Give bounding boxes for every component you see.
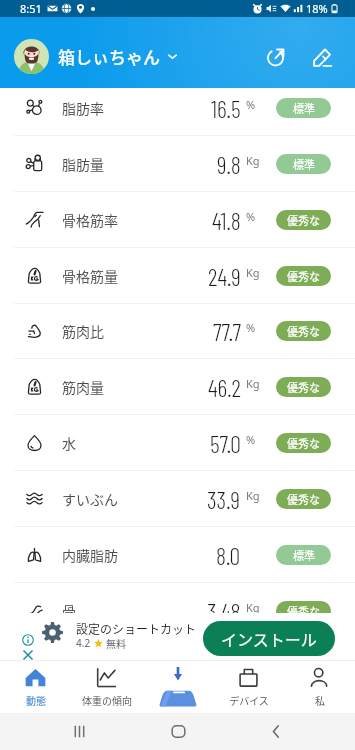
button[interactable]: 体重の傾向 bbox=[71, 660, 142, 714]
button[interactable]: Back bbox=[256, 713, 296, 750]
button[interactable]: 骨格筋率 bbox=[0, 192, 355, 248]
staticText: 優秀な bbox=[287, 379, 320, 395]
staticText: 動態 bbox=[26, 693, 46, 707]
staticText: 筋肉量 bbox=[62, 377, 104, 397]
button[interactable]: Share bbox=[254, 36, 296, 78]
button[interactable]: 脂肪率 bbox=[0, 88, 355, 136]
button[interactable]: 筋肉比 bbox=[0, 303, 355, 359]
staticText: % bbox=[246, 97, 256, 112]
button[interactable]: 骨格筋量 bbox=[0, 248, 355, 304]
staticText: 箱しぃちゃん bbox=[58, 44, 160, 69]
button[interactable]: Recents bbox=[59, 713, 99, 750]
button[interactable]: すいぶん bbox=[0, 471, 355, 527]
staticText: インストール bbox=[221, 627, 317, 650]
button[interactable]: インストール bbox=[203, 621, 335, 656]
staticText: Kg bbox=[246, 600, 260, 613]
button[interactable]: Edit bbox=[301, 36, 343, 78]
button[interactable]: 私 bbox=[284, 660, 355, 714]
button[interactable]: Close ad bbox=[22, 649, 34, 661]
staticText: Kg bbox=[246, 488, 260, 503]
staticText: Kg bbox=[246, 265, 260, 280]
staticText: 3.48 bbox=[207, 597, 241, 613]
staticText: % bbox=[246, 320, 256, 335]
button[interactable]: 動態 bbox=[0, 660, 71, 714]
staticText: 46.2 bbox=[208, 373, 241, 402]
staticText: 内臓脂肪 bbox=[62, 545, 118, 565]
button[interactable]: Home bbox=[158, 713, 198, 750]
staticText: 優秀な bbox=[287, 435, 320, 451]
staticText: 私 bbox=[315, 693, 325, 707]
staticText: 41.8 bbox=[212, 206, 241, 235]
staticText: 無料 bbox=[106, 636, 126, 650]
staticText: 脂肪量 bbox=[62, 154, 104, 174]
staticText: 18% bbox=[306, 1, 328, 16]
staticText: 標準 bbox=[293, 547, 315, 563]
staticText: 8:51 bbox=[20, 1, 42, 16]
staticText: % bbox=[246, 209, 256, 224]
staticText: 優秀な bbox=[287, 212, 320, 228]
staticText: Kg bbox=[246, 153, 260, 168]
button[interactable]: デバイス bbox=[213, 660, 284, 714]
button[interactable]: 脂肪量 bbox=[0, 136, 355, 192]
staticText: 24.9 bbox=[208, 262, 241, 291]
staticText: % bbox=[246, 432, 256, 447]
staticText: 脂肪率 bbox=[62, 98, 104, 118]
staticText: 8.0 bbox=[216, 541, 241, 570]
staticText: 33.9 bbox=[207, 485, 241, 514]
staticText: 骨格筋率 bbox=[62, 210, 118, 230]
staticText: 77.7 bbox=[213, 317, 241, 346]
button[interactable]: 内臓脂肪 bbox=[0, 527, 355, 583]
staticText: 優秀な bbox=[287, 603, 320, 613]
button[interactable]: Measure bbox=[142, 660, 213, 714]
button[interactable]: Ad info bbox=[22, 634, 34, 646]
staticText: 優秀な bbox=[287, 268, 320, 284]
staticText: 標準 bbox=[293, 156, 315, 172]
staticText: 筋肉比 bbox=[62, 321, 104, 341]
staticText: 骨 bbox=[62, 601, 76, 613]
staticText: 優秀な bbox=[287, 323, 320, 339]
staticText: 水 bbox=[62, 433, 76, 453]
button[interactable]: 筋肉量 bbox=[0, 359, 355, 415]
staticText: 4.2 bbox=[76, 636, 91, 650]
button[interactable]: 水 bbox=[0, 415, 355, 471]
staticText: 標準 bbox=[293, 100, 315, 116]
staticText: 優秀な bbox=[287, 491, 320, 507]
staticText: 9.8 bbox=[217, 150, 241, 179]
staticText: 骨格筋量 bbox=[62, 266, 118, 286]
button[interactable]: 骨 bbox=[0, 583, 355, 613]
staticText: 16.5 bbox=[211, 94, 241, 123]
staticText: 57.0 bbox=[210, 429, 241, 458]
staticText: デバイス bbox=[229, 693, 269, 707]
staticText: 体重の傾向 bbox=[82, 693, 132, 707]
staticText: すいぶん bbox=[62, 489, 118, 509]
staticText: Kg bbox=[246, 376, 260, 391]
staticText: 設定のショートカット bbox=[76, 620, 197, 637]
